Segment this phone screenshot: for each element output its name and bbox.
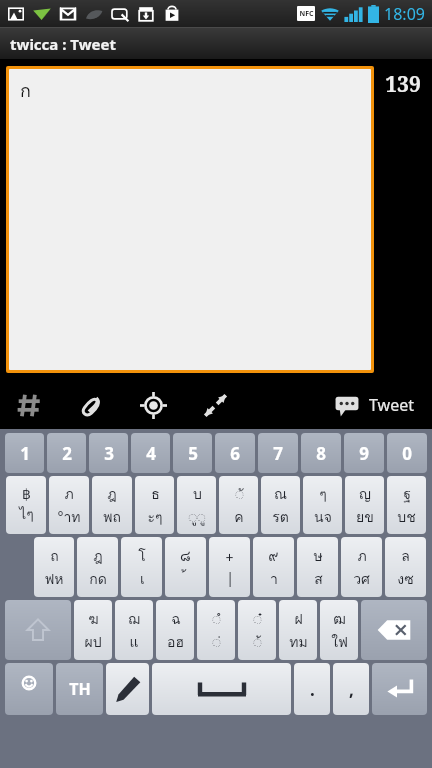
button[interactable]: Space [152, 663, 291, 715]
button[interactable]: ษ [297, 537, 338, 597]
button[interactable]: Location [136, 388, 170, 422]
staticText: 0 [402, 442, 412, 465]
button[interactable]: ณ [261, 476, 300, 534]
button[interactable]: 1 [5, 433, 44, 473]
button[interactable]: ◌ํ [197, 600, 235, 660]
staticText: NFC [299, 9, 314, 19]
staticText: 7 [273, 442, 283, 465]
button[interactable]: Hashtag [12, 388, 46, 422]
button[interactable]: 0 [387, 433, 427, 473]
staticText: เ [140, 568, 145, 590]
staticText: 139 [385, 70, 421, 99]
button[interactable]: . [294, 663, 330, 715]
button[interactable]: Enter [372, 663, 427, 715]
button[interactable]: ◌ั [219, 476, 258, 534]
staticText: 3 [104, 442, 114, 465]
staticText: ผป [84, 631, 102, 653]
button[interactable]: ๙ [253, 537, 294, 597]
button[interactable]: 9 [344, 433, 384, 473]
staticText: ฉ [171, 608, 181, 630]
staticText: ไๆ [19, 503, 34, 525]
button[interactable]: ญ [345, 476, 384, 534]
staticText: 1 [20, 442, 30, 465]
staticText: ฎ [107, 483, 117, 505]
button[interactable]: โ [121, 537, 162, 597]
button[interactable]: ฆ [74, 600, 112, 660]
staticText: ฎ [93, 545, 103, 567]
staticText: 9 [359, 442, 369, 465]
staticText: ◌่ [212, 631, 221, 653]
button[interactable]: 8 [301, 433, 341, 473]
staticText: นจ [314, 506, 332, 528]
staticText: ◌ํ [212, 608, 221, 630]
staticText: Tweet [369, 394, 414, 416]
button[interactable]: ฌ [115, 600, 153, 660]
button[interactable]: Shorten [198, 388, 232, 422]
staticText: แ [129, 631, 139, 653]
button[interactable]: ภ [49, 476, 89, 534]
button[interactable]: ◌๋ [238, 600, 276, 660]
staticText: °าท [57, 506, 81, 528]
staticText: | [226, 568, 234, 587]
button[interactable]: , [333, 663, 369, 715]
button[interactable]: Emoji and numbers [5, 663, 53, 715]
staticText: ฐ [403, 483, 411, 505]
button[interactable]: ๘ [165, 537, 206, 597]
staticText: , [349, 678, 354, 701]
staticText: ฝ [294, 608, 303, 630]
staticText: งซ [397, 568, 414, 590]
button[interactable]: ฒ [320, 600, 358, 660]
button[interactable]: ฝ [279, 600, 317, 660]
staticText: 18:09 [384, 3, 425, 25]
button[interactable]: Backspace [361, 600, 427, 660]
button[interactable]: ถ [34, 537, 74, 597]
staticText: ส [314, 568, 323, 590]
staticText: ษ [313, 545, 323, 567]
button[interactable]: 2 [47, 433, 86, 473]
staticText: 2 [62, 442, 72, 465]
staticText: 6 [230, 442, 240, 465]
button[interactable]: 3 [89, 433, 128, 473]
staticText: พถ [103, 506, 121, 528]
button[interactable]: ฎ [77, 537, 118, 597]
button[interactable]: 6 [215, 433, 255, 473]
button[interactable]: TH [56, 663, 103, 715]
staticText: ◌๋ [253, 608, 262, 630]
staticText: บ [193, 483, 202, 505]
staticText: ณ [274, 483, 287, 505]
button[interactable]: Attach file [74, 388, 108, 422]
staticText: TH [69, 678, 91, 700]
staticText: + [225, 548, 234, 567]
staticText: . [310, 678, 315, 701]
button[interactable]: ฉ [156, 600, 194, 660]
button[interactable]: 7 [258, 433, 298, 473]
button[interactable]: บ [177, 476, 216, 534]
button[interactable]: ธ [135, 476, 174, 534]
button[interactable]: 4 [131, 433, 170, 473]
button[interactable]: ๆ [303, 476, 342, 534]
button[interactable]: ล [385, 537, 426, 597]
staticText: บช [397, 506, 416, 528]
staticText: ◌ั [235, 483, 244, 505]
staticText: ภ [64, 483, 74, 505]
button[interactable]: + [209, 537, 250, 597]
staticText: ค [234, 506, 244, 528]
button[interactable]: ฎ [92, 476, 132, 534]
staticText: ธ [151, 483, 160, 505]
button[interactable]: ฐ [387, 476, 426, 534]
staticText: โ [138, 545, 146, 567]
staticText: ๘ [180, 545, 191, 567]
button[interactable]: ภ [341, 537, 382, 597]
staticText: ◌้ [253, 631, 262, 653]
staticText: ฟห [44, 568, 64, 590]
button[interactable]: ฿ [6, 476, 46, 534]
staticText: ล [401, 545, 410, 567]
button[interactable]: Tweet [334, 381, 414, 429]
button[interactable]: Handwriting [106, 663, 149, 715]
staticText: อฮ [167, 631, 184, 653]
staticText: ฆ [88, 608, 99, 630]
staticText: ฌ [128, 608, 140, 630]
button[interactable]: 5 [173, 433, 212, 473]
button[interactable]: Shift [5, 600, 71, 660]
